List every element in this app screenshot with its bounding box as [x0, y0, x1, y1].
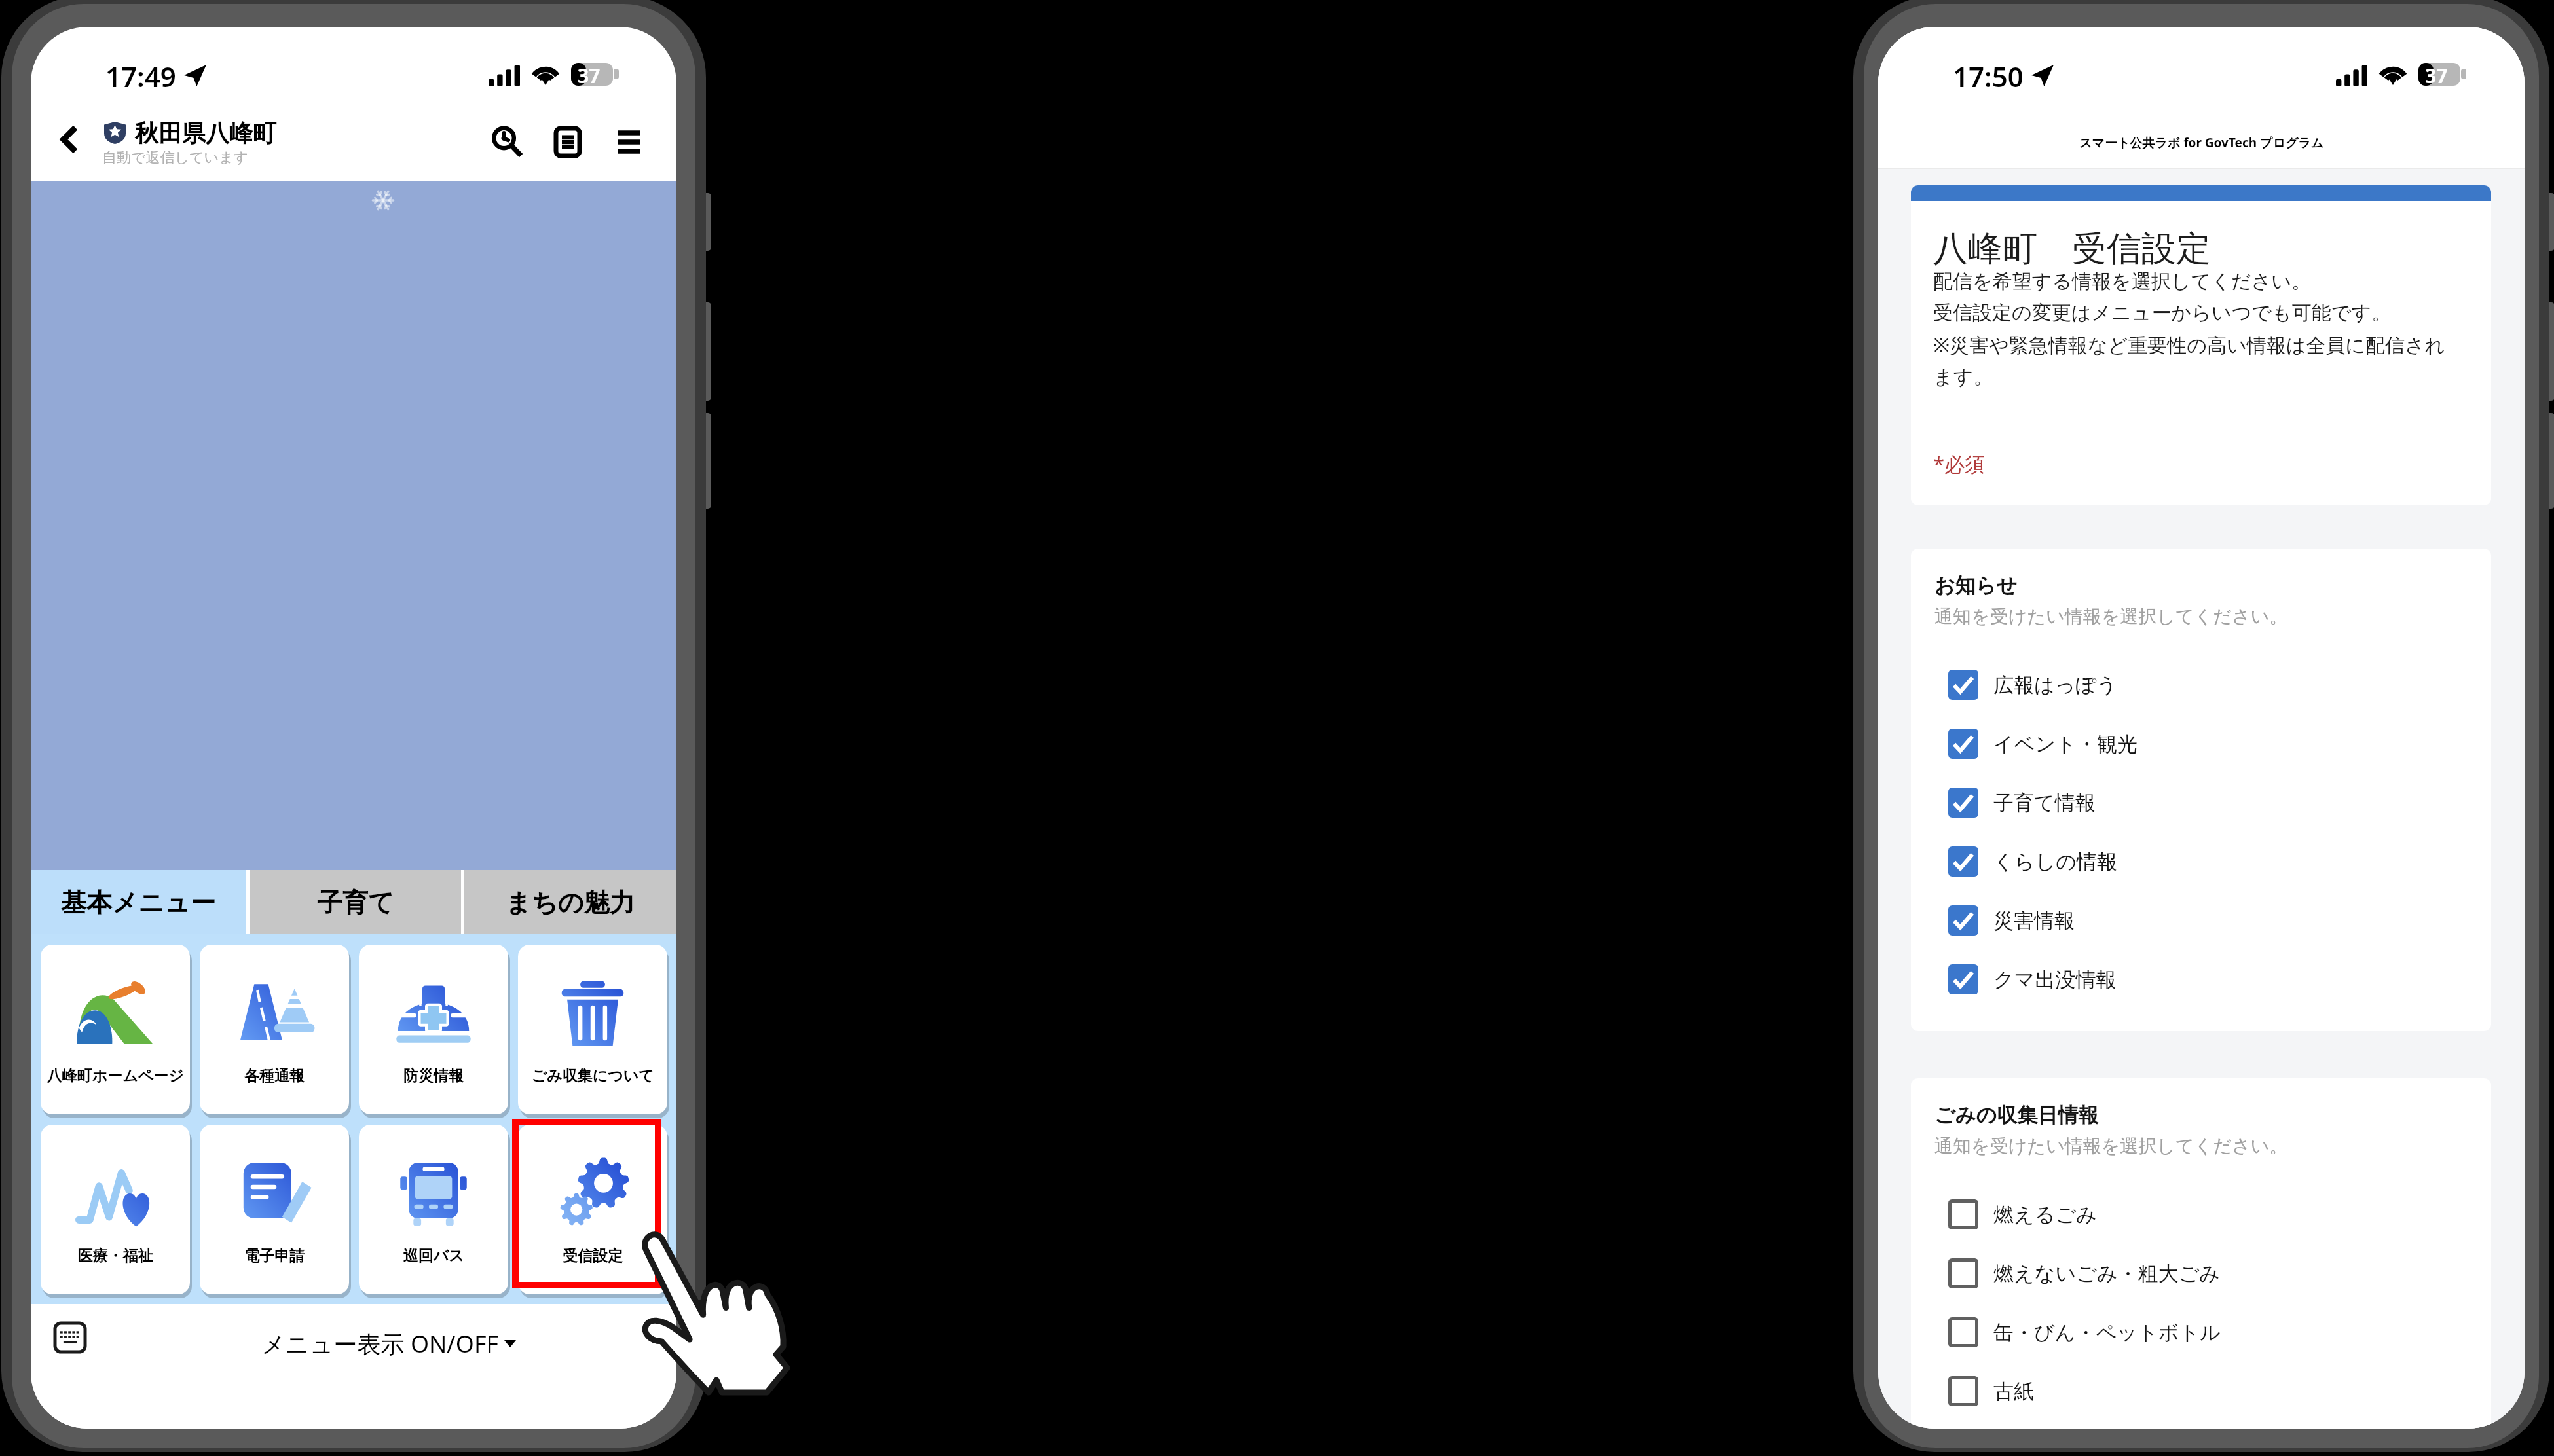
- staticText: スマート公共ラボ for GovTech プログラム: [2079, 134, 2324, 151]
- staticText: 古紙: [1993, 1379, 2034, 1404]
- button[interactable]: 巡回バス: [359, 1125, 508, 1294]
- staticText: 受信設定: [518, 1247, 667, 1265]
- staticText: 通知を受けたい情報を選択してください。: [1934, 1135, 2288, 1157]
- button[interactable]: 古紙: [1933, 1362, 2451, 1421]
- staticText: 自動で返信しています: [102, 149, 249, 167]
- button[interactable]: クマ出没情報: [1933, 950, 2451, 1009]
- staticText: 八峰町ホームページ: [41, 1066, 190, 1085]
- staticText: 広報はっぽう: [1993, 672, 2117, 698]
- staticText: 通知を受けたい情報を選択してください。: [1934, 605, 2288, 628]
- button[interactable]: 電子申請: [200, 1125, 349, 1294]
- button[interactable]: 子育て: [250, 870, 461, 934]
- button[interactable]: 災害情報: [1933, 891, 2451, 950]
- staticText: 燃えるごみ: [1993, 1202, 2097, 1228]
- staticText: 37: [578, 62, 601, 89]
- staticText: まちの魅力: [506, 886, 635, 919]
- staticText: クマ出没情報: [1993, 967, 2117, 992]
- staticText: 各種通報: [200, 1066, 349, 1085]
- staticText: 災害情報: [1993, 908, 2075, 934]
- button[interactable]: メニュー表示 ON/OFF: [261, 1320, 516, 1366]
- button[interactable]: Menu: [589, 109, 668, 175]
- button[interactable]: 八峰町ホームページ: [41, 945, 190, 1114]
- button[interactable]: 防災情報: [359, 945, 508, 1114]
- button[interactable]: 広報はっぽう: [1933, 655, 2451, 714]
- staticText: 配信を希望する情報を選択してください。 受信設定の変更はメニューからいつでも可能…: [1933, 269, 2457, 390]
- staticText: 医療・福祉: [41, 1247, 190, 1265]
- staticText: 子育て情報: [1993, 790, 2096, 816]
- staticText: イベント・観光: [1993, 731, 2138, 757]
- staticText: *必須: [1933, 450, 1986, 477]
- staticText: 37: [2425, 62, 2448, 89]
- staticText: 巡回バス: [359, 1247, 508, 1265]
- button[interactable]: 各種通報: [200, 945, 349, 1114]
- staticText: 子育て: [317, 886, 394, 919]
- button[interactable]: Back: [31, 106, 109, 173]
- button[interactable]: まちの魅力: [464, 870, 676, 934]
- staticText: 電子申請: [200, 1247, 349, 1265]
- staticText: 17:49: [105, 58, 176, 95]
- staticText: 八峰町 受信設定: [1933, 223, 2211, 270]
- button[interactable]: Search history: [468, 108, 546, 175]
- staticText: 基本メニュー: [61, 886, 216, 919]
- button[interactable]: 子育て情報: [1933, 773, 2451, 832]
- button[interactable]: 燃えるごみ: [1933, 1185, 2451, 1244]
- button[interactable]: 受信設定: [518, 1125, 667, 1294]
- button[interactable]: 医療・福祉: [41, 1125, 190, 1294]
- button[interactable]: 缶・びん・ペットボトル: [1933, 1303, 2451, 1362]
- staticText: 燃えないごみ・粗大ごみ: [1993, 1261, 2221, 1286]
- button[interactable]: くらしの情報: [1933, 832, 2451, 891]
- button[interactable]: Notes: [528, 109, 607, 175]
- staticText: 17:50: [1953, 58, 2024, 95]
- button[interactable]: Keyboard: [44, 1311, 96, 1364]
- button[interactable]: 燃えないごみ・粗大ごみ: [1933, 1244, 2451, 1303]
- staticText: 秋田県八峰町: [135, 118, 276, 148]
- button[interactable]: イベント・観光: [1933, 714, 2451, 773]
- button[interactable]: ごみ収集について: [518, 945, 667, 1114]
- staticText: メニュー表示 ON/OFF: [261, 1328, 499, 1360]
- staticText: 缶・びん・ペットボトル: [1993, 1320, 2221, 1345]
- staticText: ごみ収集について: [518, 1066, 667, 1085]
- staticText: 防災情報: [359, 1066, 508, 1085]
- button[interactable]: 基本メニュー: [31, 870, 246, 934]
- staticText: お知らせ: [1934, 573, 2018, 598]
- staticText: ごみの収集日情報: [1934, 1102, 2099, 1128]
- staticText: くらしの情報: [1993, 849, 2117, 875]
